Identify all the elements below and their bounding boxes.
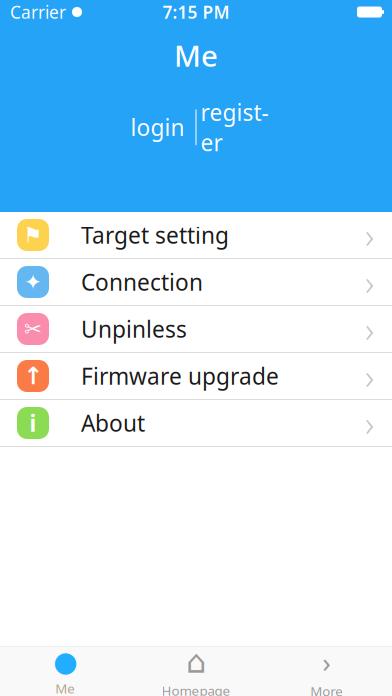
staticText: ✦ [24, 270, 42, 294]
staticText: Firmware upgrade [81, 361, 279, 391]
staticText: About [81, 408, 145, 438]
staticText: ● [53, 646, 77, 678]
button[interactable]: ✂ [0, 306, 392, 353]
staticText: › [365, 259, 374, 305]
staticText: ⚑ [23, 223, 42, 247]
staticText: register [200, 97, 268, 157]
staticText: Carrier [10, 0, 66, 23]
staticText: Homepage [161, 682, 230, 696]
button[interactable]: › [261, 647, 392, 696]
staticText: Me [55, 679, 75, 696]
staticText: › [365, 400, 374, 446]
staticText: Connection [81, 267, 203, 297]
button[interactable]: register [196, 107, 272, 147]
button[interactable]: login [119, 107, 195, 147]
staticText: › [365, 306, 374, 352]
button[interactable]: ⌂ [131, 647, 261, 696]
staticText: More [310, 682, 343, 696]
staticText: i [29, 408, 36, 438]
staticText: › [322, 643, 331, 680]
staticText: ⌂ [186, 643, 206, 680]
button[interactable]: ⚑ [0, 212, 392, 259]
button[interactable]: ↑ [0, 353, 392, 400]
staticText: login [130, 112, 184, 142]
staticText: ↑ [23, 362, 43, 390]
staticText: ✂ [24, 317, 42, 341]
staticText: › [365, 353, 374, 399]
staticText: Me [174, 36, 218, 75]
staticText: Target setting [81, 220, 229, 250]
button[interactable]: i [0, 400, 392, 447]
staticText: Unpinless [81, 314, 187, 344]
staticText: 7:15 PM [162, 0, 229, 23]
button[interactable]: ✦ [0, 259, 392, 306]
staticText: › [365, 212, 374, 258]
button[interactable]: ● [0, 647, 131, 696]
